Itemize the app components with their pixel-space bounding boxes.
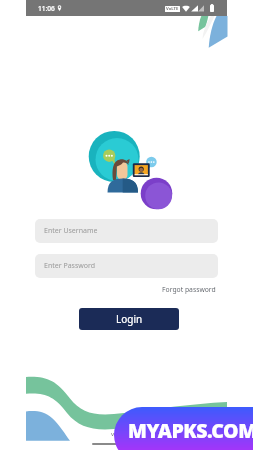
button[interactable]: Enter Username <box>35 219 218 243</box>
staticText: MYAPKS.COM <box>128 417 253 444</box>
staticText: Enter Password <box>44 261 96 271</box>
staticText: 11:06 <box>38 4 55 13</box>
button[interactable]: Forgot password <box>160 283 218 296</box>
button[interactable]: Login <box>79 308 179 330</box>
staticText: VoLTE <box>166 6 179 12</box>
staticText: Login <box>116 312 143 326</box>
staticText: Enter Username <box>44 226 98 236</box>
button[interactable]: Enter Password <box>35 254 218 278</box>
staticText: version 1.0 <box>111 430 142 438</box>
